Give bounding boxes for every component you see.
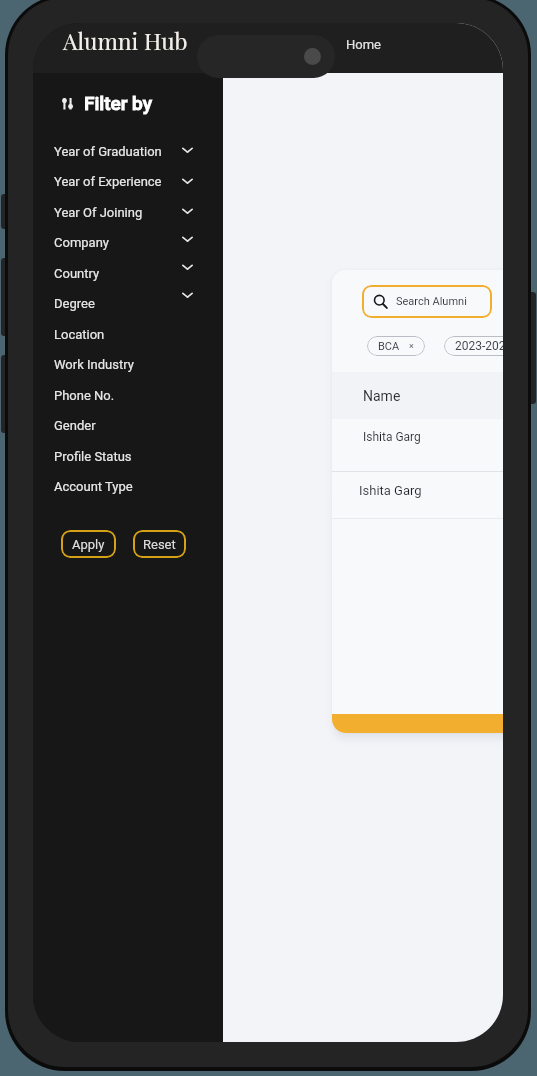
staticText: Search Alumni <box>396 295 467 308</box>
staticText: Degree <box>54 296 95 311</box>
button[interactable]: Profile Status <box>33 442 223 470</box>
staticText: × <box>409 341 414 352</box>
staticText: Year Of Joining <box>54 205 143 220</box>
staticText: Work Industry <box>54 357 134 372</box>
button[interactable]: Year of Experience <box>33 167 223 195</box>
staticText: Apply <box>72 537 105 552</box>
staticText: Company <box>54 235 109 250</box>
staticText: Location <box>54 327 105 342</box>
button[interactable]: Year Of Joining <box>33 198 223 226</box>
button[interactable]: Home <box>340 34 387 55</box>
button[interactable]: Reset <box>133 530 186 558</box>
staticText: Phone No. <box>54 388 115 403</box>
other: Power <box>528 292 536 404</box>
button[interactable]: Apply <box>61 530 116 558</box>
button[interactable]: BCA <box>367 336 425 356</box>
staticText: Gender <box>54 418 96 433</box>
button[interactable]: Phone No. <box>33 381 223 409</box>
button[interactable]: Search Alumni <box>362 285 492 318</box>
button[interactable]: Work Industry <box>33 350 223 378</box>
button[interactable]: Ishita Garg <box>332 419 503 472</box>
button[interactable]: Degree <box>33 289 223 317</box>
button[interactable]: 2023-2026 <box>444 336 503 356</box>
staticText: Ishita Garg <box>363 430 421 444</box>
button[interactable]: Year of Graduation <box>33 137 223 165</box>
staticText: Ishita Garg <box>359 483 422 498</box>
staticText: Home <box>346 37 381 52</box>
button[interactable]: Country <box>33 259 223 287</box>
staticText: Account Type <box>54 479 133 494</box>
staticText: 2023-2026 <box>455 339 503 353</box>
staticText: Name <box>363 388 401 404</box>
staticText: Country <box>54 266 100 281</box>
button[interactable]: Company <box>33 228 223 256</box>
other: Volume <box>1 194 9 229</box>
button[interactable]: Filter by <box>59 92 152 114</box>
staticText: Filter by <box>84 92 152 114</box>
staticText: BCA <box>378 340 400 353</box>
button[interactable]: Location <box>33 320 223 348</box>
staticText: Reset <box>143 537 176 552</box>
staticText: Alumni Hub <box>63 25 188 56</box>
button[interactable]: Gender <box>33 411 223 439</box>
other: Volume <box>1 355 9 433</box>
staticText: Year of Experience <box>54 174 162 189</box>
other: Volume <box>1 258 9 336</box>
staticText: Profile Status <box>54 449 132 464</box>
staticText: Year of Graduation <box>54 144 162 159</box>
button[interactable]: Account Type <box>33 472 223 500</box>
button[interactable]: Ishita Garg <box>332 472 503 519</box>
